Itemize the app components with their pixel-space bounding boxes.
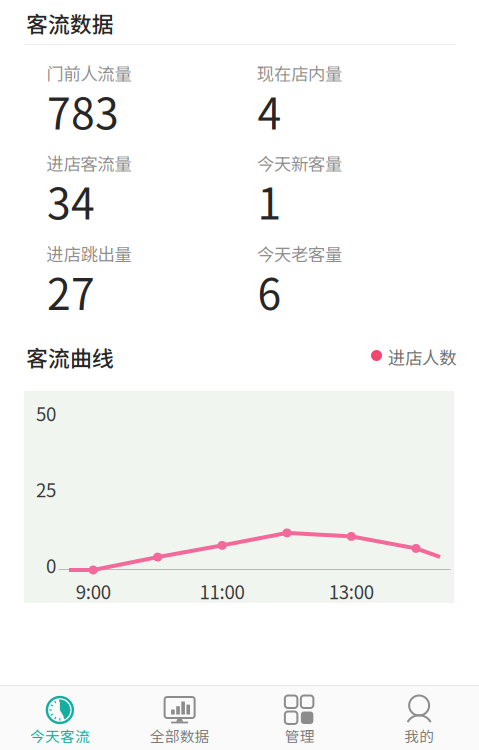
button[interactable]: 全部数据 (120, 679, 240, 750)
staticText: 783 (47, 80, 119, 142)
staticText: 客流曲线 (26, 341, 114, 373)
staticText: 50 (36, 399, 56, 426)
staticText: 进店跳出量 (46, 241, 131, 266)
staticText: 进店人数 (388, 344, 456, 370)
staticText: 1 (257, 170, 281, 232)
staticText: 27 (47, 261, 95, 322)
staticText: 4 (257, 80, 281, 142)
staticText: 今天新客量 (257, 150, 342, 176)
staticText: 25 (36, 475, 56, 502)
staticText: 我的 (404, 725, 434, 746)
staticText: 今天客流 (30, 725, 90, 746)
staticText: 门前人流量 (46, 60, 131, 86)
staticText: 客流数据 (26, 7, 114, 39)
staticText: 11:00 (200, 577, 245, 604)
button[interactable]: 管理 (239, 679, 359, 750)
staticText: 今天老客量 (257, 241, 342, 266)
staticText: 全部数据 (150, 725, 210, 746)
button[interactable]: 今天客流 (0, 679, 120, 750)
staticText: 6 (257, 261, 281, 322)
staticText: 管理 (284, 725, 314, 746)
staticText: 现在店内量 (257, 60, 342, 86)
staticText: 34 (47, 170, 95, 232)
staticText: 9:00 (76, 577, 111, 604)
staticText: 进店客流量 (46, 150, 131, 176)
button[interactable]: 我的 (359, 679, 479, 750)
staticText: 0 (46, 551, 56, 578)
staticText: 13:00 (329, 577, 374, 604)
